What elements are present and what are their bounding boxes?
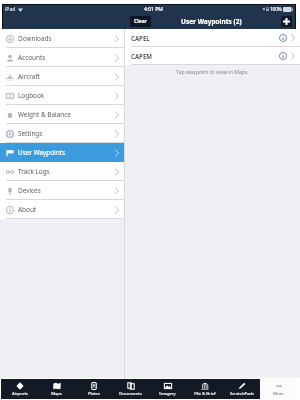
button[interactable]: ScratchPads bbox=[223, 379, 260, 399]
button[interactable]: Logbook bbox=[0, 86, 124, 105]
staticText: Logbook bbox=[18, 91, 45, 100]
staticText: CAPEL bbox=[131, 34, 150, 42]
button[interactable]: Clear bbox=[130, 16, 151, 27]
button[interactable]: Devices bbox=[0, 181, 124, 200]
button[interactable]: Downloads bbox=[0, 29, 124, 48]
staticText: 100% bbox=[270, 6, 282, 12]
button[interactable]: Weight & Balance bbox=[0, 105, 124, 124]
button[interactable]: Imagery bbox=[149, 379, 186, 399]
staticText: Downloads bbox=[18, 34, 52, 43]
button[interactable]: Documents bbox=[112, 379, 149, 399]
button[interactable]: CAPEM bbox=[125, 47, 300, 65]
staticText: CAPEM bbox=[131, 52, 153, 60]
staticText: Documents bbox=[119, 391, 142, 397]
button[interactable]: Add waypoint bbox=[281, 16, 292, 27]
staticText: User Waypoints bbox=[18, 148, 66, 157]
staticText: More bbox=[273, 391, 284, 397]
staticText: Aircraft bbox=[18, 72, 40, 81]
button[interactable]: Settings bbox=[0, 124, 124, 143]
button[interactable]: Info bbox=[279, 34, 287, 42]
staticText: Plates bbox=[88, 391, 100, 397]
staticText: ScratchPads bbox=[230, 391, 254, 397]
staticText: Devices bbox=[18, 186, 41, 195]
button[interactable]: Accounts bbox=[0, 48, 124, 67]
staticText: Maps bbox=[51, 391, 62, 397]
button[interactable]: Track Logs bbox=[0, 162, 124, 181]
staticText: Weight & Balance bbox=[18, 110, 71, 119]
button[interactable]: Airports bbox=[1, 379, 38, 399]
staticText: User Waypoints (2) bbox=[181, 17, 242, 26]
button[interactable]: CAPEL bbox=[125, 29, 300, 47]
button[interactable]: Info bbox=[279, 52, 287, 60]
button[interactable]: Maps bbox=[38, 379, 75, 399]
button[interactable]: User Waypoints bbox=[0, 143, 124, 162]
staticText: 4:01 PM bbox=[144, 6, 163, 13]
staticText: Imagery bbox=[159, 391, 176, 397]
button[interactable]: Plates bbox=[75, 379, 112, 399]
staticText: Accounts bbox=[18, 53, 46, 62]
staticText: About bbox=[18, 205, 37, 214]
staticText: Track Logs bbox=[18, 167, 50, 176]
staticText: Airports bbox=[12, 391, 28, 397]
staticText: Settings bbox=[18, 129, 43, 138]
button[interactable]: Aircraft bbox=[0, 67, 124, 86]
button[interactable]: More bbox=[260, 379, 297, 399]
button[interactable]: File & Brief bbox=[186, 379, 223, 399]
staticText: iPad bbox=[5, 6, 16, 13]
staticText: Tap waypoint to view in Maps. bbox=[176, 68, 249, 75]
staticText: Clear bbox=[134, 18, 147, 25]
staticText: File & Brief bbox=[194, 391, 216, 397]
button[interactable]: About bbox=[0, 200, 124, 219]
